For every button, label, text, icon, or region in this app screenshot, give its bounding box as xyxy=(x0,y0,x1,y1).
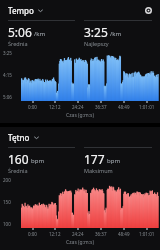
staticText: 36:37 xyxy=(95,231,107,237)
staticText: 177 xyxy=(84,151,105,167)
staticText: 3:25 xyxy=(84,24,108,40)
staticText: 5:06 xyxy=(3,94,12,100)
staticText: Średnia xyxy=(8,167,28,174)
staticText: /km xyxy=(34,30,46,38)
staticText: 150 xyxy=(3,199,11,205)
staticText: Tempo xyxy=(8,5,34,16)
staticText: 160 xyxy=(8,151,29,167)
button[interactable]: 177 xyxy=(84,147,152,174)
staticText: Średnia xyxy=(8,40,28,47)
staticText: 36:37 xyxy=(95,104,107,110)
staticText: Najlepszy xyxy=(84,40,109,47)
staticText: 0:00 xyxy=(28,231,37,237)
staticText: bpm xyxy=(107,157,120,165)
staticText: 5:06 xyxy=(8,24,32,40)
staticText: Czas (g:m:s) xyxy=(0,112,160,119)
staticText: 24:24 xyxy=(72,104,84,110)
button[interactable]: 160 xyxy=(8,147,75,174)
staticText: Tętno xyxy=(8,132,30,143)
staticText: 4:15 xyxy=(3,72,12,78)
staticText: 3:25 xyxy=(3,50,12,56)
staticText: /km xyxy=(110,30,122,38)
button[interactable]: Ustawienia wykresu xyxy=(141,3,155,17)
staticText: 1:01:01 xyxy=(139,231,155,237)
staticText: Czas (g:m:s) xyxy=(0,239,160,246)
button[interactable]: 5:06 xyxy=(8,20,75,47)
staticText: 48:49 xyxy=(118,231,130,237)
staticText: bpm xyxy=(31,157,44,165)
staticText: 0:00 xyxy=(28,104,37,110)
staticText: Maksimum xyxy=(84,167,113,174)
staticText: 12:12 xyxy=(49,231,61,237)
button[interactable]: Tempo xyxy=(8,5,44,16)
staticText: 24:24 xyxy=(72,231,84,237)
button[interactable]: 3:25 xyxy=(84,20,152,47)
staticText: 12:12 xyxy=(49,104,61,110)
staticText: 200 xyxy=(3,177,11,183)
staticText: 1:01:01 xyxy=(139,104,155,110)
staticText: 100 xyxy=(3,221,11,227)
button[interactable]: Tętno xyxy=(8,132,40,143)
staticText: 48:49 xyxy=(118,104,130,110)
